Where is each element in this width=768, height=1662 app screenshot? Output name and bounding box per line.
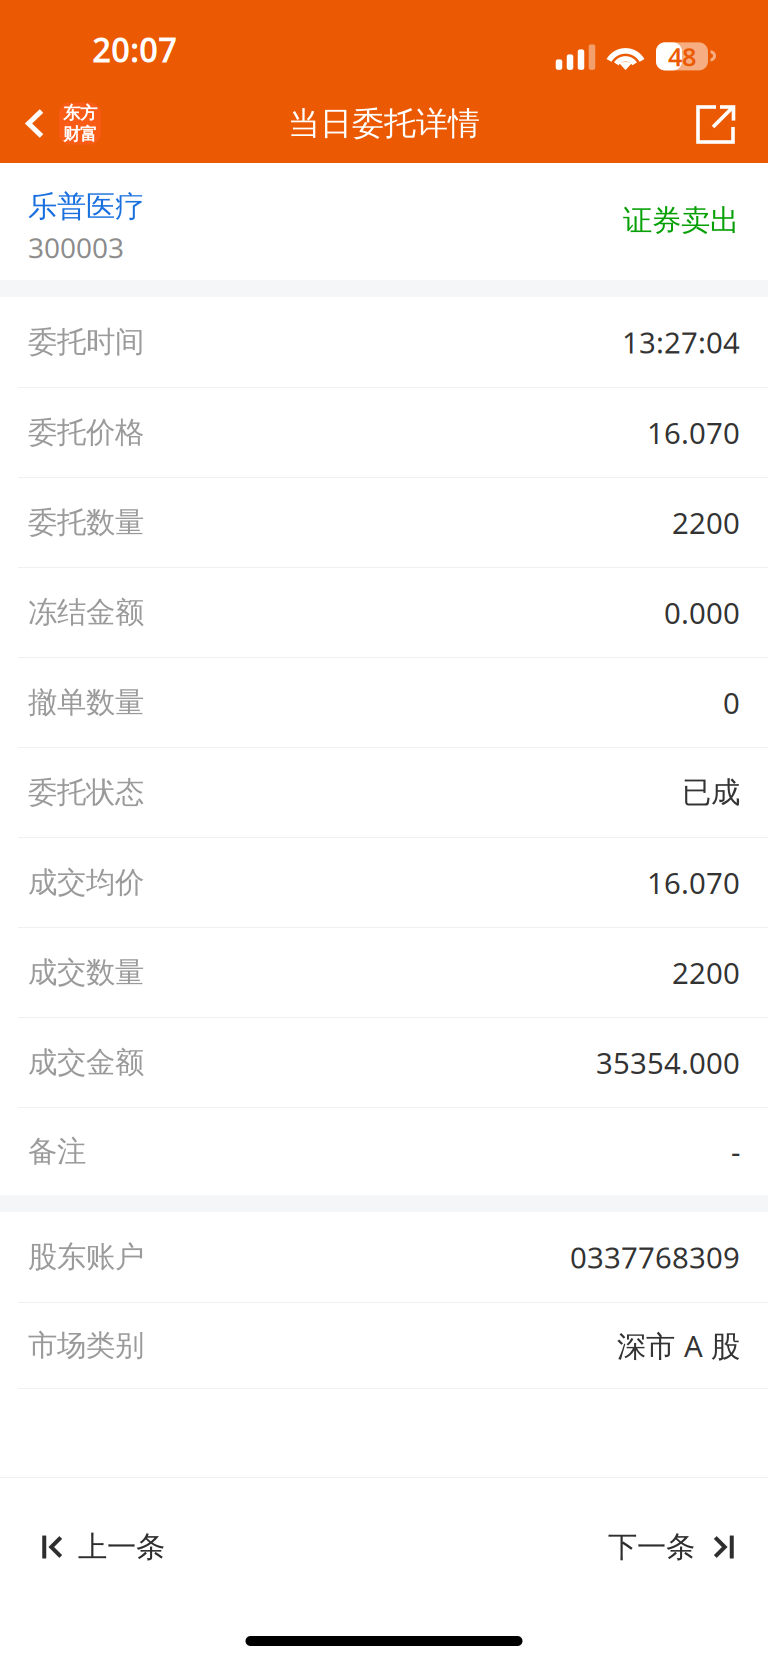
staticText: 上一条	[78, 1529, 165, 1565]
button[interactable]: Back	[0, 93, 101, 159]
staticText: 2200	[672, 503, 740, 542]
staticText: 2200	[672, 953, 740, 992]
staticText: 0337768309	[570, 1237, 740, 1276]
staticText: 委托数量	[28, 504, 144, 540]
staticText: 市场类别	[28, 1327, 144, 1363]
staticText: 乐普医疗	[28, 188, 144, 224]
staticText: 下一条	[608, 1529, 695, 1565]
staticText: 35354.000	[596, 1043, 740, 1082]
staticText: 16.070	[647, 863, 740, 902]
staticText: 股东账户	[28, 1239, 144, 1275]
staticText: 证券卖出	[623, 202, 739, 238]
staticText: 48	[668, 39, 696, 73]
staticText: 成交金额	[28, 1044, 144, 1080]
staticText: 成交均价	[28, 864, 144, 900]
staticText: 16.070	[647, 413, 740, 452]
staticText: 已成	[682, 774, 740, 810]
staticText: 300003	[28, 229, 124, 266]
staticText: 委托价格	[28, 414, 144, 450]
staticText: 20:07	[92, 27, 177, 72]
staticText: 东方	[63, 102, 97, 123]
staticText: 当日委托详情	[288, 104, 480, 143]
staticText: 委托时间	[28, 324, 144, 360]
staticText: 财富	[63, 123, 97, 145]
button[interactable]: Share	[671, 94, 768, 159]
staticText: 委托状态	[28, 774, 144, 810]
button[interactable]: 上一条	[0, 1478, 195, 1594]
button[interactable]: 下一条	[578, 1478, 768, 1594]
staticText: -	[731, 1132, 740, 1171]
staticText: 深市 A 股	[617, 1326, 740, 1365]
staticText: 备注	[28, 1133, 86, 1169]
staticText: 成交数量	[28, 954, 144, 990]
staticText: 13:27:04	[622, 322, 740, 361]
staticText: 0.000	[664, 593, 740, 632]
staticText: 冻结金额	[28, 594, 144, 630]
staticText: 0	[723, 683, 740, 722]
staticText: 撤单数量	[28, 684, 144, 720]
